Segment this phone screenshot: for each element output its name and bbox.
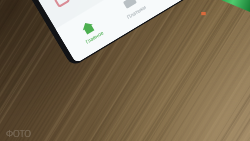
button[interactable]: Кредиты [79, 0, 250, 56]
button[interactable]: Главное [59, 3, 121, 60]
button[interactable]: Диалоги [143, 0, 204, 10]
staticText: Платежи [125, 4, 148, 21]
staticText: ФОТО [6, 127, 32, 139]
button[interactable]: Карты [48, 0, 250, 16]
staticText: Кредиты [100, 15, 135, 42]
staticText: Главное [84, 29, 105, 46]
button[interactable]: Вклады и счета [64, 0, 250, 41]
button[interactable]: Платежи [101, 0, 163, 35]
staticText: Вклады и счета [88, 0, 145, 22]
